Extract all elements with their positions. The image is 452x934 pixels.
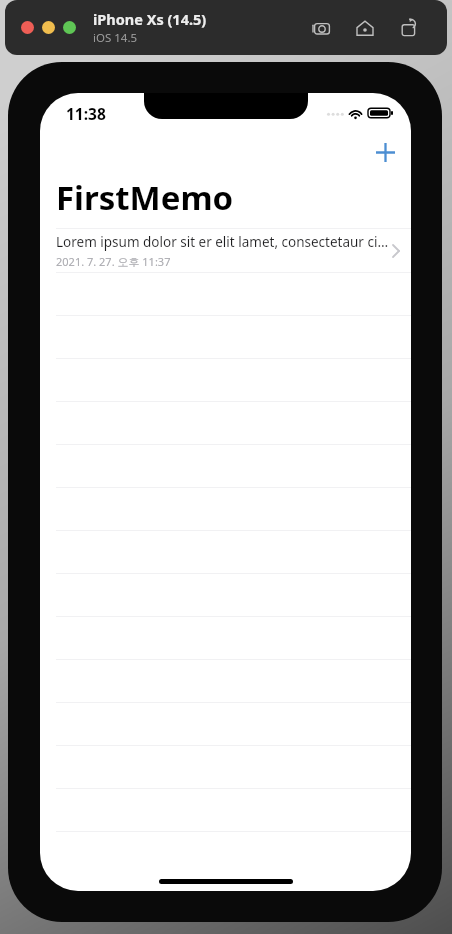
staticText: 11:38 xyxy=(66,103,106,124)
button[interactable]: Home xyxy=(351,14,379,42)
button[interactable]: Add memo xyxy=(368,135,402,169)
button[interactable] xyxy=(42,21,55,34)
button[interactable]: Rotate xyxy=(395,14,423,42)
button[interactable] xyxy=(21,21,34,34)
staticText: FirstMemo xyxy=(56,175,234,220)
staticText: iPhone Xs (14.5) xyxy=(93,9,207,29)
button[interactable] xyxy=(63,21,76,34)
staticText: iOS 14.5 xyxy=(93,30,138,46)
button[interactable]: Screenshot xyxy=(307,14,335,42)
staticText: 2021. 7. 27. 오후 11:37 xyxy=(56,254,171,269)
staticText: Lorem ipsum dolor sit er elit lamet, con… xyxy=(56,233,391,251)
button[interactable]: Lorem ipsum dolor sit er elit lamet, con… xyxy=(40,229,411,272)
